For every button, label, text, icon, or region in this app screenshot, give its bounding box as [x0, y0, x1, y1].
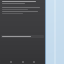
button[interactable] — [1, 35, 44, 38]
button[interactable]: Side panel — [45, 0, 64, 64]
button[interactable] — [1, 7, 44, 10]
button[interactable] — [1, 11, 44, 14]
button[interactable] — [1, 1, 44, 4]
